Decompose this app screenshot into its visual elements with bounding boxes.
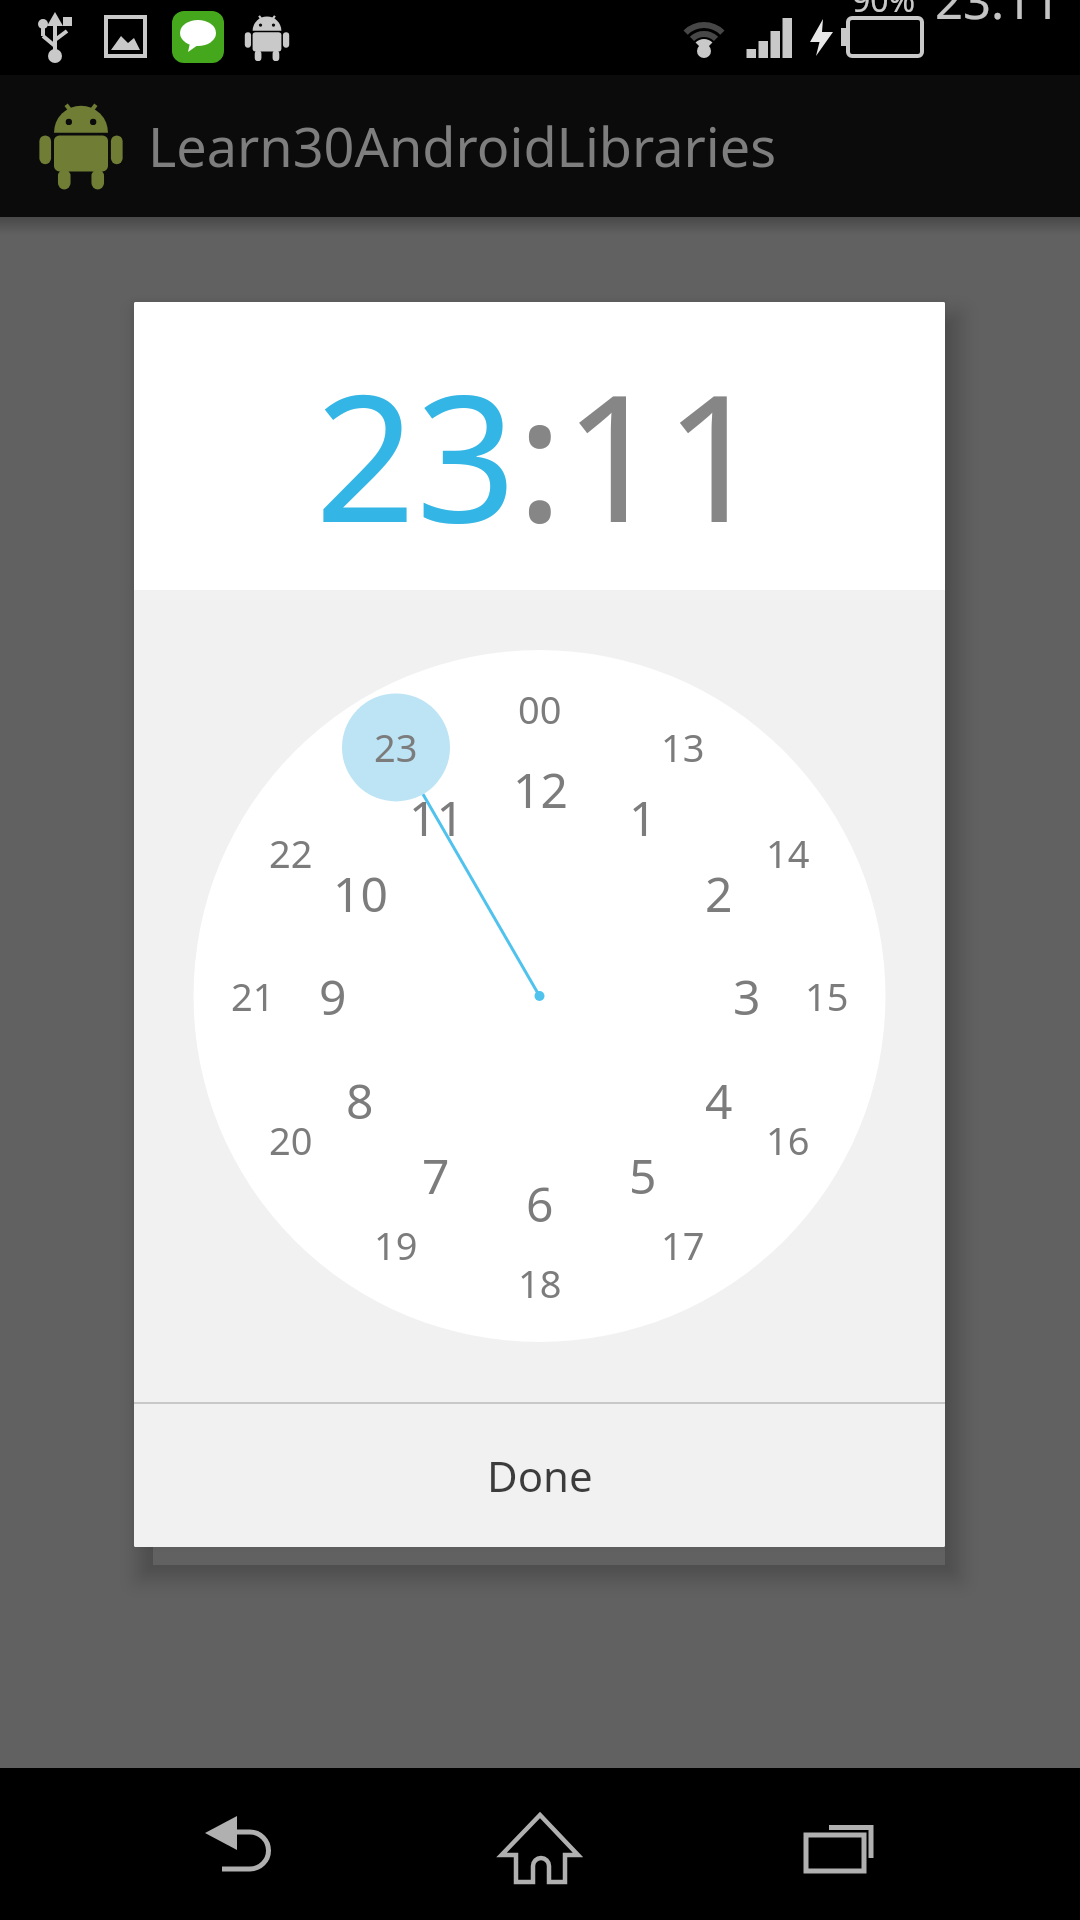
button[interactable]: Done xyxy=(134,1404,945,1547)
staticText: 6 xyxy=(526,1171,554,1236)
staticText: 23 xyxy=(374,721,418,773)
staticText: 90% xyxy=(852,0,916,22)
staticText: 4 xyxy=(705,1068,733,1133)
staticText: 21 xyxy=(231,970,275,1022)
staticText: 18 xyxy=(518,1257,562,1309)
staticText: 00 xyxy=(518,683,562,735)
staticText: Learn30AndroidLibraries xyxy=(148,109,777,183)
staticText: 7 xyxy=(422,1143,450,1208)
staticText: 11 xyxy=(409,785,464,850)
staticText: 5 xyxy=(629,1143,657,1208)
button[interactable] xyxy=(360,1768,720,1920)
staticText: 20 xyxy=(269,1114,313,1166)
staticText: 17 xyxy=(661,1219,705,1271)
staticText: 1 xyxy=(629,785,657,850)
staticText: 8 xyxy=(346,1068,374,1133)
staticText: 23:11 xyxy=(315,334,765,574)
staticText: 13 xyxy=(661,721,705,773)
staticText: 19 xyxy=(374,1219,418,1271)
staticText: 9 xyxy=(319,964,347,1029)
staticText: 10 xyxy=(333,861,388,926)
button[interactable] xyxy=(0,1768,360,1920)
staticText: 15 xyxy=(805,970,849,1022)
button[interactable] xyxy=(720,1768,1080,1920)
staticText: 12 xyxy=(513,757,568,822)
staticText: Done xyxy=(487,1447,593,1504)
staticText: 23:11 xyxy=(935,0,1061,34)
staticText: 2 xyxy=(705,861,733,926)
staticText: 14 xyxy=(766,827,810,879)
staticText: 22 xyxy=(269,827,313,879)
staticText: 16 xyxy=(766,1114,810,1166)
staticText: 3 xyxy=(733,964,761,1029)
